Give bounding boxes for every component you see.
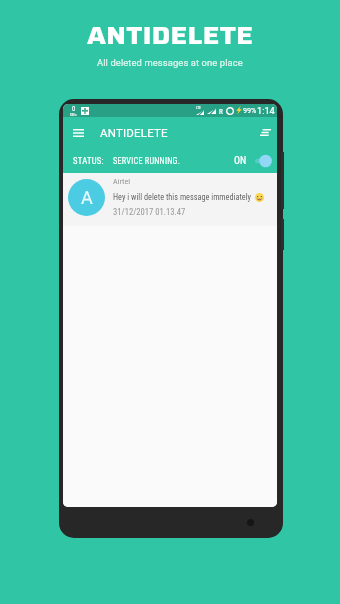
staticText: All deleted messages at one place (97, 57, 243, 68)
button[interactable]: Sort messages (253, 117, 277, 148)
staticText: KB/s (70, 113, 77, 117)
staticText: Hey i will delete this message immediate… (113, 192, 252, 202)
staticText: SERVICE RUNNING. (113, 156, 181, 166)
staticText: STATUS: (73, 156, 104, 166)
button[interactable]: A (63, 173, 277, 226)
button[interactable]: Service toggle, on (234, 154, 272, 168)
staticText: 1:14 (257, 105, 275, 116)
staticText: 99% (243, 106, 257, 114)
staticText: LTE (196, 106, 201, 110)
staticText: ANTIDELETE (100, 126, 168, 139)
staticText: ANTIDELETE (87, 15, 254, 55)
staticText: 31/12/2017 01.13.47 (113, 207, 186, 217)
staticText: A (81, 187, 93, 208)
button[interactable]: Open navigation menu (63, 117, 93, 148)
staticText: ON (234, 155, 247, 167)
staticText: 0 (72, 105, 76, 113)
staticText: R (219, 107, 223, 115)
staticText: Airtel (113, 177, 131, 186)
